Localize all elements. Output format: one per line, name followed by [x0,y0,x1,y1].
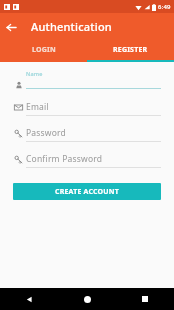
button[interactable]: REGISTER [87,40,174,60]
button[interactable]: Name [13,70,161,90]
button[interactable]: Password [13,127,161,142]
staticText: REGISTER [113,45,148,55]
staticText: Confirm Password [26,153,103,165]
button[interactable]: Back [0,16,22,38]
button[interactable]: LOGIN [0,40,87,60]
staticText: CREATE ACCOUNT [55,187,119,197]
staticText: Name [26,70,43,77]
staticText: Password [26,127,67,139]
button[interactable]: Confirm Password [13,153,161,168]
button[interactable]: Back [18,288,40,310]
button[interactable]: Home [76,288,98,310]
button[interactable]: Email [13,101,161,116]
staticText: Email [26,101,49,113]
staticText: 6:49 [158,3,171,11]
staticText: Authentication [31,19,112,34]
staticText: LOGIN [32,45,56,55]
button[interactable]: CREATE ACCOUNT [13,183,161,200]
button[interactable]: Recent apps [134,288,156,310]
